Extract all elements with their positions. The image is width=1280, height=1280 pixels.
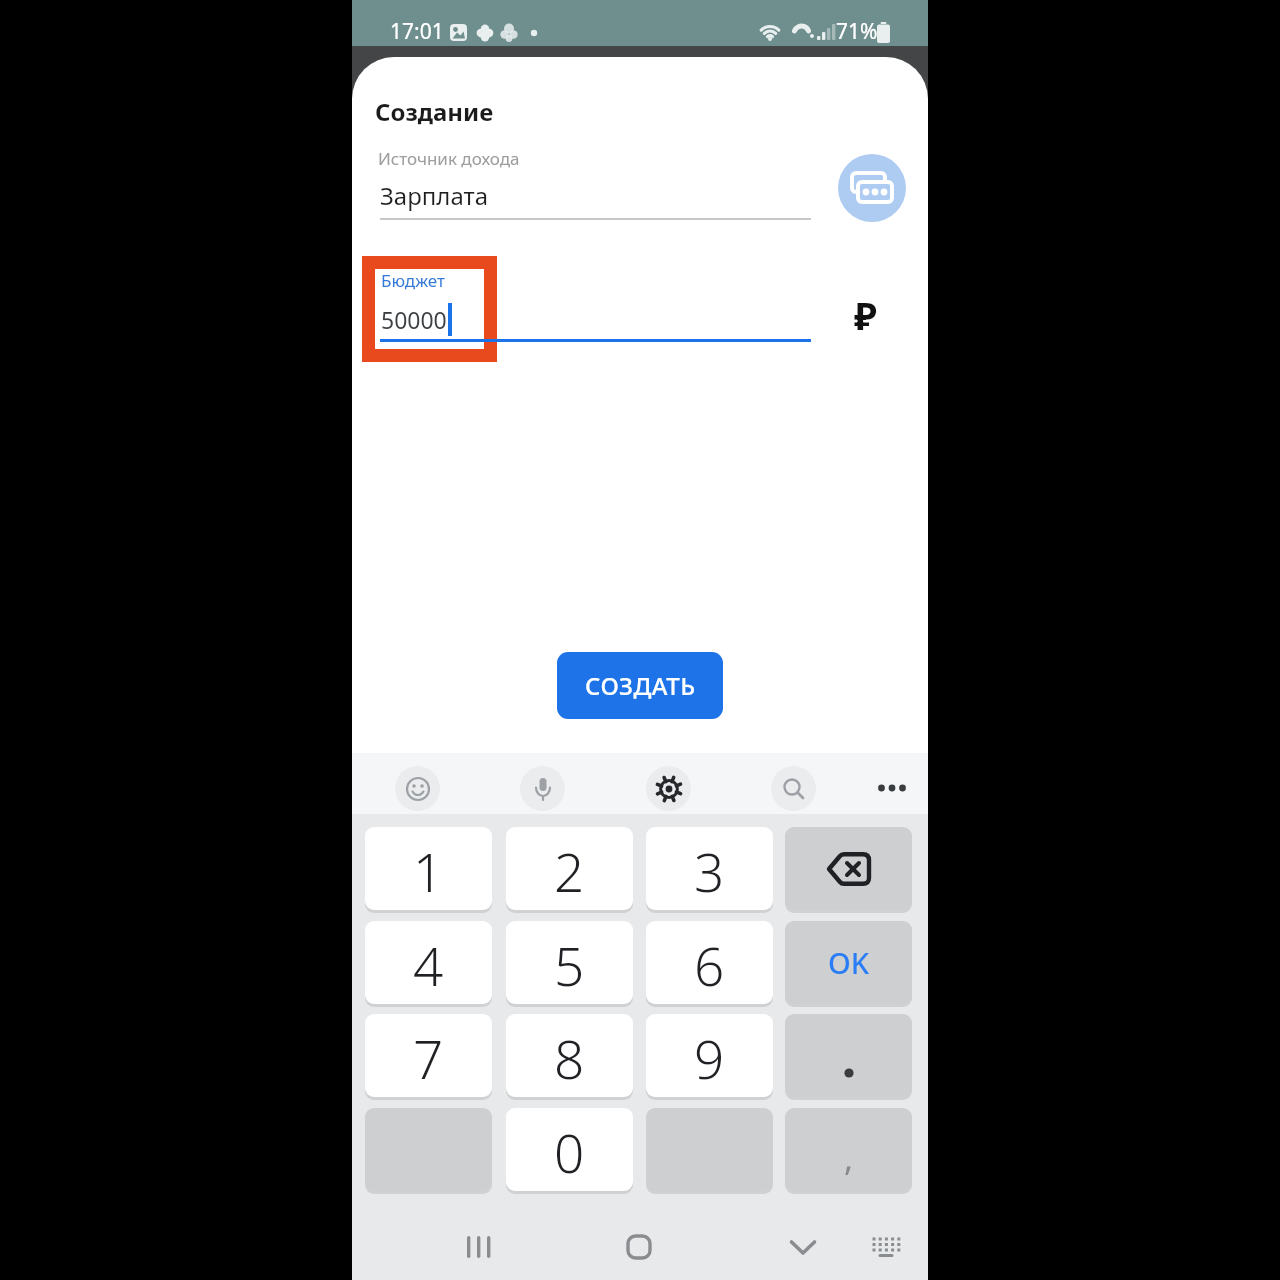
button[interactable]: 9 (646, 1014, 773, 1097)
button[interactable]: 2 (506, 827, 633, 910)
button[interactable]: OK (785, 921, 912, 1004)
button[interactable] (520, 766, 565, 811)
staticText: 1 (413, 835, 444, 907)
button[interactable] (785, 1014, 912, 1097)
button[interactable] (785, 827, 912, 910)
staticText: 2 (554, 835, 585, 907)
button[interactable] (646, 766, 691, 811)
button[interactable]: 3 (646, 827, 773, 910)
staticText: Зарплата (380, 179, 489, 212)
button[interactable] (449, 1217, 509, 1277)
staticText: Бюджет (381, 269, 445, 292)
staticText: 0 (554, 1116, 585, 1188)
staticText: 7 (413, 1022, 444, 1094)
button[interactable]: 5 (506, 921, 633, 1004)
staticText: , (844, 1135, 854, 1181)
staticText: 8 (554, 1022, 585, 1094)
staticText: 50000 (381, 304, 447, 335)
staticText: Источник дохода (378, 147, 520, 170)
staticText: OK (828, 943, 870, 982)
button[interactable] (395, 766, 440, 811)
staticText: Создание (375, 95, 494, 128)
button[interactable] (856, 1217, 916, 1277)
staticText: ₽ (854, 289, 877, 341)
button[interactable]: , (785, 1108, 912, 1191)
button[interactable]: 1 (365, 827, 492, 910)
button[interactable] (870, 766, 914, 810)
staticText: 9 (694, 1022, 725, 1094)
button[interactable]: 8 (506, 1014, 633, 1097)
button[interactable] (609, 1217, 669, 1277)
button[interactable] (838, 154, 906, 222)
button[interactable]: 4 (365, 921, 492, 1004)
button[interactable]: СОЗДАТЬ (557, 652, 723, 719)
staticText: СОЗДАТЬ (585, 669, 696, 702)
button[interactable]: 0 (506, 1108, 633, 1191)
staticText: 5 (554, 929, 585, 1001)
button[interactable]: 6 (646, 921, 773, 1004)
button[interactable] (773, 1217, 833, 1277)
staticText: 17:01 (390, 17, 444, 46)
staticText: 4 (413, 929, 444, 1001)
staticText: 3 (694, 835, 725, 907)
button[interactable] (771, 766, 816, 811)
staticText: 71% (836, 17, 878, 46)
button[interactable]: 7 (365, 1014, 492, 1097)
staticText: 6 (694, 929, 725, 1001)
